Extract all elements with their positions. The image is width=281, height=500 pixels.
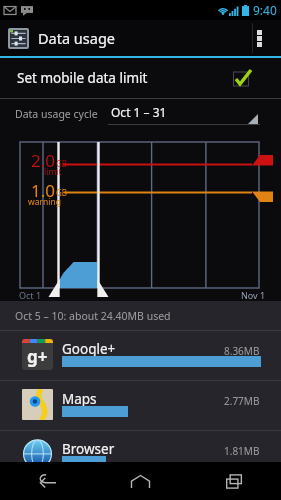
button[interactable]: Recent apps <box>187 462 281 500</box>
button[interactable]: More options <box>253 20 281 56</box>
staticText: 2.77MB <box>224 394 260 408</box>
button[interactable]: Home <box>93 462 187 500</box>
staticText: 1.81MB <box>224 444 260 458</box>
staticText: g+ <box>27 345 48 368</box>
staticText: Set mobile data limit <box>17 69 148 87</box>
staticText: GB <box>56 187 68 198</box>
staticText: Oct 5 – 10: about 24.40MB used <box>15 309 171 323</box>
button[interactable]: g+ <box>0 331 281 380</box>
staticText: 2.0 <box>31 149 56 172</box>
staticText: Data usage <box>38 28 115 48</box>
staticText: warning <box>28 196 61 208</box>
button[interactable]: Back <box>0 462 93 500</box>
staticText: Browser <box>62 440 115 458</box>
staticText: Nov 1 <box>241 289 266 301</box>
button[interactable]: Maps <box>0 381 281 430</box>
button[interactable]: Data usage <box>0 20 252 56</box>
staticText: Oct 1 <box>19 289 42 301</box>
staticText: 1.0 <box>31 179 56 202</box>
staticText: Google+ <box>62 340 116 358</box>
staticText: Maps <box>62 390 97 408</box>
button[interactable]: Set mobile data limit <box>0 58 281 98</box>
button[interactable]: Browser <box>0 431 281 480</box>
staticText: 9:40 <box>253 2 277 18</box>
button[interactable]: Oct 1 – 31 <box>108 99 260 129</box>
staticText: 8.36MB <box>224 344 260 358</box>
staticText: GB <box>56 158 68 169</box>
staticText: Data usage cycle <box>15 107 98 121</box>
staticText: Oct 1 – 31 <box>111 104 167 120</box>
staticText: limit <box>44 166 62 178</box>
